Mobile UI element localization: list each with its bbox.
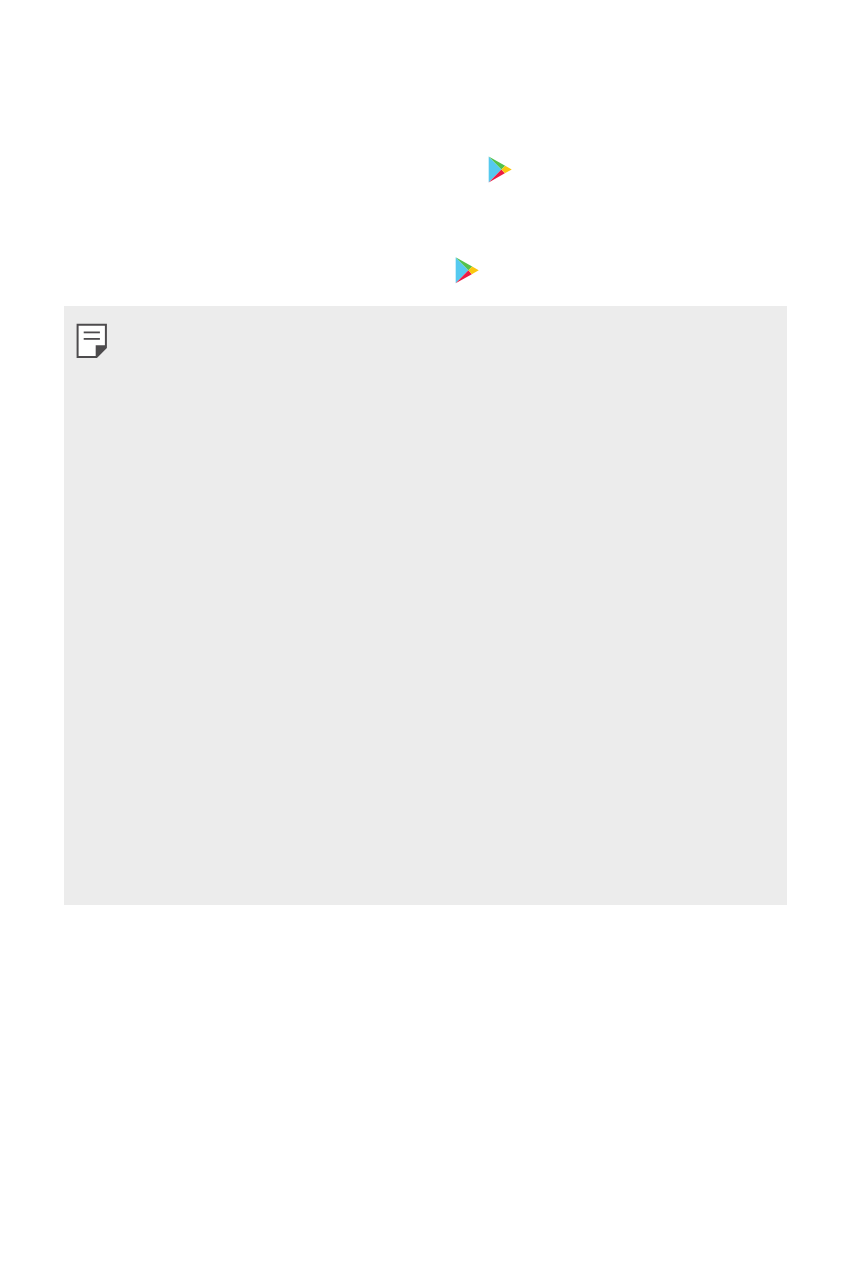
button[interactable]: Get it on Google Play bbox=[455, 257, 480, 285]
button[interactable]: Google Play bbox=[488, 156, 513, 184]
button[interactable]: Screenshot bbox=[64, 306, 787, 905]
